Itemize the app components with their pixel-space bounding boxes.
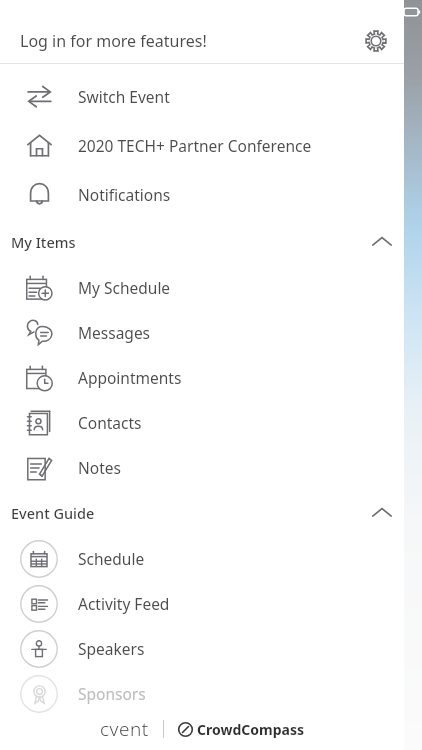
button[interactable]: Speakers bbox=[0, 626, 404, 671]
button[interactable]: My Schedule bbox=[0, 265, 404, 310]
button[interactable]: Log in for more features! bbox=[0, 18, 348, 63]
staticText: 2020 TECH+ Partner Conference bbox=[78, 135, 312, 156]
staticText: CrowdCompass bbox=[197, 720, 304, 739]
button[interactable]: Settings bbox=[348, 18, 404, 63]
staticText: Sponsors bbox=[78, 683, 146, 704]
button[interactable]: Schedule bbox=[0, 536, 404, 581]
button[interactable]: Appointments bbox=[0, 355, 404, 400]
button[interactable]: Messages bbox=[0, 310, 404, 355]
button[interactable]: Switch Event bbox=[0, 72, 404, 121]
staticText: Activity Feed bbox=[78, 593, 170, 614]
button[interactable]: Activity Feed bbox=[0, 581, 404, 626]
button[interactable]: 2020 TECH+ Partner Conference bbox=[0, 121, 404, 170]
button[interactable]: My Items bbox=[0, 219, 404, 265]
staticText: My Schedule bbox=[78, 277, 171, 298]
staticText: Messages bbox=[78, 322, 151, 343]
staticText: Contacts bbox=[78, 412, 142, 433]
staticText: Appointments bbox=[78, 367, 182, 388]
button[interactable]: Notes bbox=[0, 445, 404, 490]
button[interactable]: Contacts bbox=[0, 400, 404, 445]
other: Collapse Event Guide bbox=[360, 491, 404, 535]
staticText: Event Guide bbox=[11, 503, 95, 523]
staticText: Log in for more features! bbox=[20, 30, 207, 52]
button[interactable]: Event Guide bbox=[0, 490, 404, 536]
staticText: cvent bbox=[100, 716, 149, 742]
staticText: Switch Event bbox=[78, 86, 170, 107]
other: Collapse My Items bbox=[360, 220, 404, 264]
staticText: Notes bbox=[78, 457, 121, 478]
staticText: Notifications bbox=[78, 184, 171, 205]
button[interactable]: Sponsors bbox=[0, 671, 404, 716]
staticText: My Items bbox=[11, 232, 76, 252]
staticText: Schedule bbox=[78, 548, 145, 569]
staticText: Speakers bbox=[78, 638, 145, 659]
button[interactable]: Notifications bbox=[0, 170, 404, 219]
